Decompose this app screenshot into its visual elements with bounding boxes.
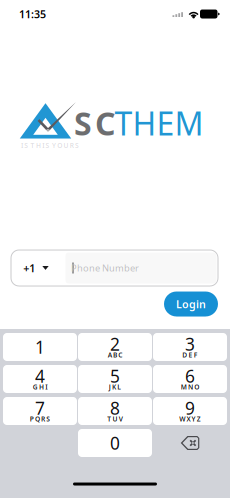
staticText: J xyxy=(109,383,111,391)
staticText: W xyxy=(179,415,185,423)
staticText: C xyxy=(118,351,122,359)
staticText: 6 xyxy=(185,364,195,387)
staticText: 8 xyxy=(110,396,120,419)
button[interactable]: 9 xyxy=(153,397,227,425)
button[interactable]: 6 xyxy=(153,365,227,393)
staticText: Q xyxy=(35,415,40,423)
staticText: G xyxy=(33,383,38,391)
staticText: V xyxy=(119,415,123,423)
staticText: H xyxy=(36,141,41,150)
button[interactable]: Login xyxy=(164,291,218,316)
staticText: L xyxy=(117,383,121,391)
staticText: H xyxy=(39,383,44,391)
button[interactable]: 0 xyxy=(78,429,152,457)
staticText: THEM xyxy=(114,102,203,144)
staticText: O xyxy=(194,383,199,391)
staticText: R xyxy=(70,141,74,150)
staticText: 5 xyxy=(110,364,120,387)
staticText: K xyxy=(112,383,116,391)
staticText: U xyxy=(63,141,68,150)
staticText: X xyxy=(186,415,190,423)
staticText: 7 xyxy=(35,396,45,419)
staticText: 11:35 xyxy=(19,7,46,21)
staticText: F xyxy=(194,351,198,359)
staticText: S xyxy=(45,141,49,150)
staticText: A xyxy=(108,351,112,359)
staticText: I xyxy=(45,383,47,391)
staticText: S xyxy=(74,102,92,144)
staticText: R xyxy=(41,415,45,423)
staticText: O xyxy=(57,141,62,150)
staticText: T xyxy=(31,141,35,150)
button[interactable]: 4 xyxy=(3,365,77,393)
staticText: T xyxy=(107,415,111,423)
staticText: 0 xyxy=(110,431,120,454)
button[interactable]: 5 xyxy=(78,365,152,393)
staticText: 2 xyxy=(110,332,120,355)
staticText: S xyxy=(46,415,50,423)
staticText: +1 xyxy=(23,261,35,275)
button[interactable]: 2 xyxy=(78,333,152,361)
staticText: E xyxy=(188,351,192,359)
staticText: Login xyxy=(176,297,206,311)
staticText: B xyxy=(113,351,117,359)
staticText: M xyxy=(181,383,187,391)
staticText: C xyxy=(95,102,116,144)
staticText: S xyxy=(75,141,79,150)
staticText: S xyxy=(24,141,28,150)
button[interactable]: 8 xyxy=(78,397,152,425)
staticText: 4 xyxy=(35,364,45,387)
staticText: Z xyxy=(197,415,201,423)
button[interactable]: Country code xyxy=(90,252,138,284)
staticText: D xyxy=(182,351,187,359)
staticText: I xyxy=(42,141,44,150)
staticText: 9 xyxy=(185,396,195,419)
button[interactable]: 7 xyxy=(3,397,77,425)
staticText: N xyxy=(188,383,193,391)
staticText: U xyxy=(112,415,117,423)
staticText: P xyxy=(30,415,34,423)
staticText: I xyxy=(21,141,23,150)
button[interactable]: Delete xyxy=(153,429,227,457)
staticText: Y xyxy=(52,141,56,150)
staticText: Y xyxy=(192,415,196,423)
button[interactable]: 1 xyxy=(3,333,77,361)
staticText: 3 xyxy=(185,332,195,355)
staticText: Phone Number xyxy=(71,262,139,274)
button[interactable]: 3 xyxy=(153,333,227,361)
staticText: 1 xyxy=(35,335,45,358)
